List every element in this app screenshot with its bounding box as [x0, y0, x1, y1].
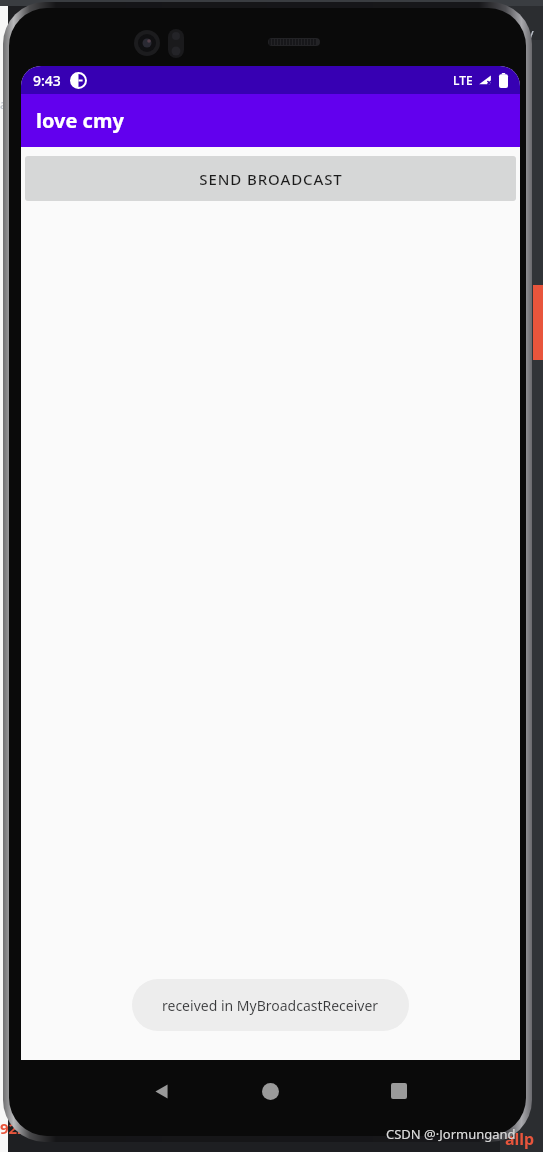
button[interactable]: Back	[119, 1060, 203, 1122]
button[interactable]: Home	[228, 1060, 312, 1122]
staticText: love cmy	[36, 107, 124, 134]
button[interactable]: Recent apps	[357, 1060, 441, 1122]
staticText: LTE	[453, 72, 473, 88]
staticText: SEND BROADCAST	[199, 169, 343, 189]
button[interactable]: SEND BROADCAST	[25, 156, 516, 201]
staticText: tiv	[519, 24, 534, 42]
staticText: a	[0, 95, 8, 113]
staticText: 9:43	[33, 71, 61, 90]
staticText: received in MyBroadcastReceiver	[162, 996, 379, 1015]
staticText: 922	[0, 1118, 26, 1138]
staticText: CSDN @·Jormungand	[386, 1125, 516, 1143]
staticText: allp	[505, 1128, 535, 1150]
